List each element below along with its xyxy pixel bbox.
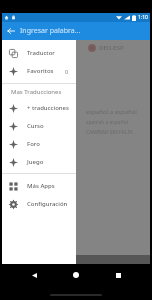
staticText: Ingresar palabra... [20, 26, 81, 36]
button[interactable]: Más Apps [2, 177, 76, 195]
button[interactable]: Curso [2, 117, 76, 135]
staticText: Más Apps [27, 182, 55, 190]
staticText: CAMBIAR SIN FALTA [86, 129, 133, 136]
staticText: Juego [27, 158, 44, 166]
button[interactable]: Juego [2, 153, 76, 171]
button[interactable]: Favoritos [2, 62, 76, 80]
staticText: DEO-ESP [99, 44, 124, 52]
button[interactable]: Traductor [2, 44, 76, 62]
staticText: + traducciones [27, 104, 69, 112]
button[interactable]: Recents [110, 267, 126, 283]
button[interactable]: Back [2, 22, 20, 40]
button[interactable]: Back [26, 267, 42, 283]
button[interactable]: Configuración [2, 195, 76, 213]
staticText: español a español [86, 108, 137, 116]
staticText: Mas Traducciones [11, 88, 62, 96]
staticText: spanish a español [86, 119, 129, 126]
button[interactable]: Foro [2, 135, 76, 153]
staticText: Curso [27, 122, 44, 130]
staticText: Favoritos [27, 67, 54, 75]
staticText: 1:10 [138, 14, 148, 21]
staticText: Configuración [27, 200, 68, 208]
button[interactable]: Home [68, 267, 84, 283]
button[interactable]: + traducciones [2, 99, 76, 117]
staticText: Traductor [27, 49, 55, 57]
staticText: 0 [65, 68, 69, 75]
staticText: Foro [27, 140, 40, 148]
